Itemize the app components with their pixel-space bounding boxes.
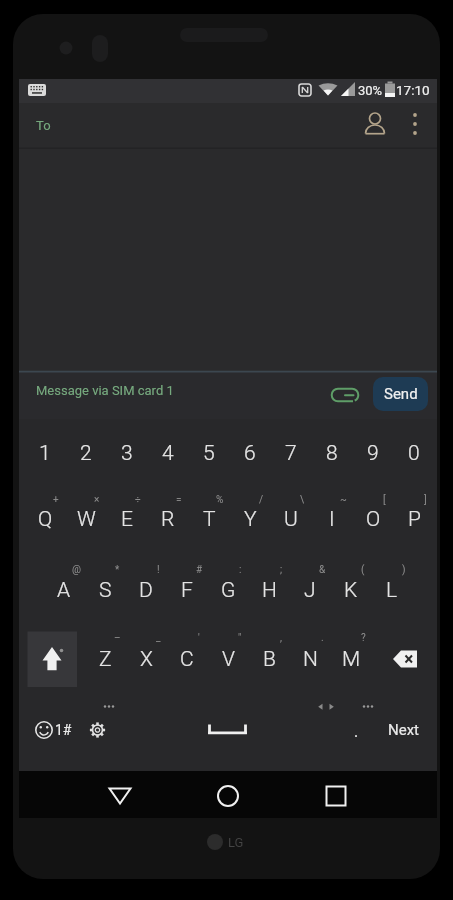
button[interactable]: K: [311, 570, 391, 610]
staticText: .: [354, 722, 359, 741]
staticText: /: [259, 494, 264, 506]
staticText: L: [386, 578, 398, 603]
button[interactable]: 7: [251, 433, 331, 473]
staticText: %: [216, 494, 224, 506]
staticText: ~: [340, 494, 347, 506]
staticText: 1: [39, 441, 51, 466]
staticText: :: [239, 564, 242, 576]
staticText: #: [196, 564, 203, 576]
button[interactable]: F: [147, 570, 227, 610]
button[interactable]: S: [65, 570, 145, 610]
button[interactable]: 1: [5, 433, 85, 473]
button[interactable]: 0: [374, 433, 453, 473]
button[interactable]: D: [106, 570, 186, 610]
button[interactable]: 1#: [23, 710, 103, 750]
button[interactable]: [100, 780, 140, 812]
button[interactable]: J: [270, 570, 350, 610]
staticText: Message via SIM card 1: [36, 383, 174, 398]
staticText: @: [72, 564, 81, 576]
staticText: *: [115, 564, 120, 576]
staticText: 4: [162, 441, 174, 466]
button[interactable]: Y: [210, 499, 290, 539]
staticText: (: [361, 564, 365, 576]
staticText: ?: [361, 632, 366, 644]
button[interactable]: G: [188, 570, 268, 610]
button[interactable]: X: [106, 639, 186, 679]
staticText: .: [321, 632, 324, 644]
button[interactable]: 3: [87, 433, 167, 473]
staticText: =: [176, 494, 182, 506]
button[interactable]: [28, 632, 77, 686]
button[interactable]: R: [128, 499, 208, 539]
button[interactable]: [190, 710, 266, 750]
button[interactable]: 5: [169, 433, 249, 473]
staticText: B: [263, 647, 276, 672]
button[interactable]: [402, 108, 428, 140]
button[interactable]: M: [311, 639, 391, 679]
button[interactable]: E: [87, 499, 167, 539]
staticText: !: [157, 564, 160, 576]
staticText: LG: [228, 835, 244, 850]
button[interactable]: N: [270, 639, 350, 679]
button[interactable]: 8: [292, 433, 372, 473]
staticText: P: [408, 507, 421, 532]
button[interactable]: [208, 780, 248, 812]
button[interactable]: V: [188, 639, 268, 679]
button[interactable]: [83, 712, 111, 748]
staticText: ": [238, 632, 242, 644]
staticText: Send: [384, 385, 418, 403]
button[interactable]: [30, 712, 58, 748]
staticText: [: [383, 494, 386, 506]
staticText: 2: [80, 441, 92, 466]
staticText: ×: [94, 494, 100, 506]
button[interactable]: 4: [128, 433, 208, 473]
staticText: H: [262, 578, 277, 603]
button[interactable]: I: [292, 499, 372, 539]
button[interactable]: C: [147, 639, 227, 679]
staticText: 6: [244, 441, 256, 466]
button[interactable]: Q: [5, 499, 85, 539]
button[interactable]: 2: [46, 433, 126, 473]
button[interactable]: [328, 380, 362, 408]
staticText: J: [304, 578, 316, 603]
button[interactable]: Send: [373, 377, 428, 411]
staticText: 17:10: [396, 82, 430, 98]
button[interactable]: B: [229, 639, 309, 679]
button[interactable]: L: [352, 570, 432, 610]
button[interactable]: Next: [364, 710, 444, 750]
staticText: –: [114, 632, 121, 644]
button[interactable]: [385, 640, 425, 678]
staticText: &: [319, 564, 326, 576]
button[interactable]: 9: [333, 433, 413, 473]
button[interactable]: [316, 780, 356, 812]
button[interactable]: U: [251, 499, 331, 539]
button[interactable]: [19, 103, 437, 148]
button[interactable]: T: [169, 499, 249, 539]
staticText: E: [121, 507, 133, 532]
staticText: 8: [326, 441, 338, 466]
staticText: 7: [285, 441, 297, 466]
staticText: Next: [388, 721, 420, 739]
button[interactable]: [360, 108, 392, 140]
button[interactable]: .: [316, 711, 396, 751]
button[interactable]: W: [46, 499, 126, 539]
button[interactable]: 6: [210, 433, 290, 473]
staticText: K: [344, 578, 358, 603]
staticText: ÷: [135, 494, 141, 506]
staticText: A: [57, 578, 71, 603]
button[interactable]: P: [374, 499, 453, 539]
staticText: F: [181, 578, 193, 603]
staticText: N: [303, 647, 318, 672]
staticText: Z: [99, 647, 112, 672]
button[interactable]: A: [24, 570, 104, 610]
staticText: S: [99, 578, 112, 603]
staticText: I: [329, 507, 335, 532]
button[interactable]: Z: [65, 639, 145, 679]
staticText: ]: [424, 494, 427, 506]
button[interactable]: H: [229, 570, 309, 610]
staticText: V: [222, 647, 235, 672]
button[interactable]: O: [333, 499, 413, 539]
staticText: W: [77, 507, 96, 532]
staticText: 5: [203, 441, 215, 466]
staticText: 3: [121, 441, 133, 466]
